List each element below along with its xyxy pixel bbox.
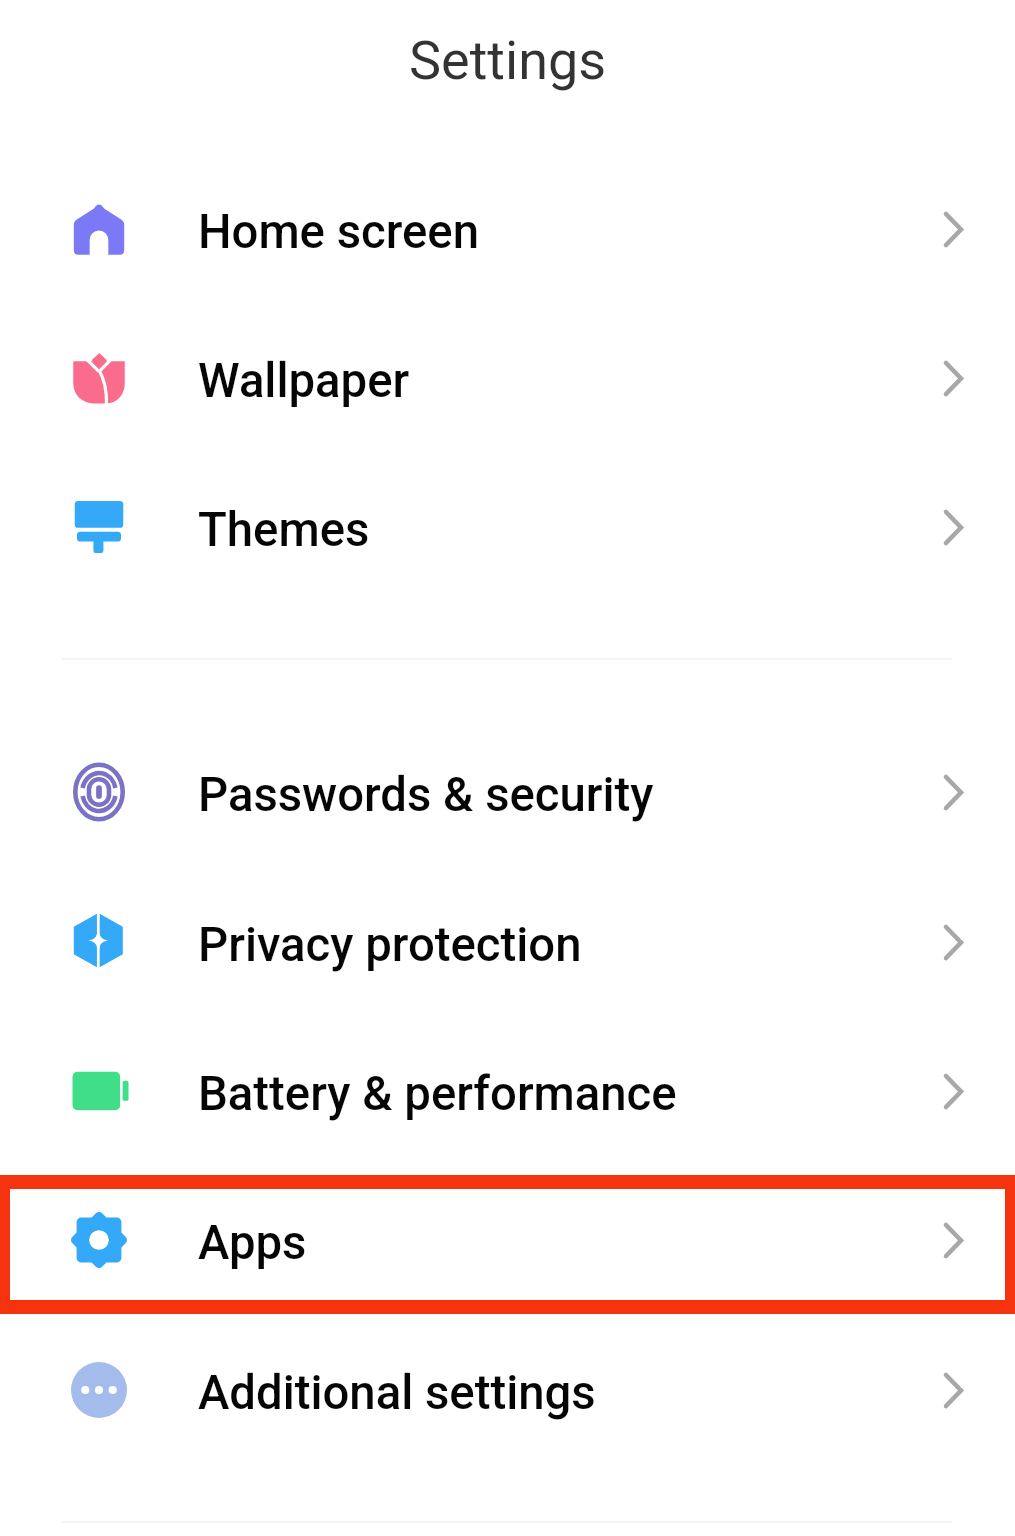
staticText: Settings	[409, 29, 607, 92]
button[interactable]: Additional settings	[0, 1318, 1015, 1467]
button[interactable]: Themes	[0, 455, 1015, 604]
button[interactable]: Privacy protection	[0, 870, 1015, 1019]
button[interactable]: Passwords & security	[0, 720, 1015, 869]
other: Open Wallpaper	[905, 306, 1015, 455]
staticText: Themes	[198, 502, 370, 557]
staticText: Passwords & security	[198, 767, 654, 822]
button[interactable]: Apps	[0, 1168, 1015, 1317]
staticText: Apps	[198, 1215, 307, 1270]
button[interactable]: Wallpaper	[0, 306, 1015, 455]
button[interactable]: Home screen	[0, 157, 1015, 306]
staticText: Additional settings	[198, 1365, 596, 1420]
staticText: Battery & performance	[198, 1066, 677, 1121]
other: Open Privacy protection	[905, 870, 1015, 1019]
other: Open Apps	[905, 1168, 1015, 1317]
other: Open Passwords & security	[905, 720, 1015, 869]
other: Open Themes	[905, 455, 1015, 604]
other: Open Battery & performance	[905, 1019, 1015, 1168]
staticText: Wallpaper	[198, 353, 410, 408]
button[interactable]: Battery & performance	[0, 1019, 1015, 1168]
other: Open Additional settings	[905, 1318, 1015, 1467]
other: Open Home screen	[905, 157, 1015, 306]
staticText: Home screen	[198, 204, 479, 259]
staticText: Privacy protection	[198, 917, 582, 972]
